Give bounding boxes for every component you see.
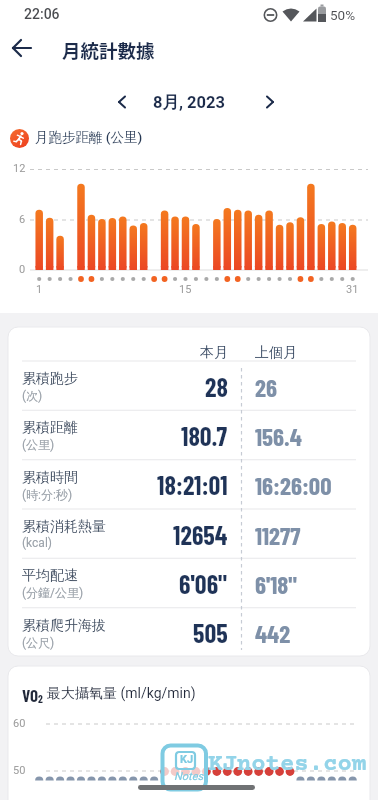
staticText: (公尺) (22, 635, 55, 650)
staticText: 最大攝氧量 (ml/kg/min) (47, 685, 196, 703)
staticText: 累積消耗熱量 (22, 518, 106, 536)
staticText: KJ (180, 753, 194, 766)
staticText: 本月 (200, 344, 228, 362)
staticText: 50% (330, 7, 356, 23)
staticText: 累積爬升海拔 (22, 617, 106, 635)
staticText: (次) (22, 388, 43, 403)
staticText: (分鐘/公里) (22, 585, 84, 600)
staticText: 442 (255, 618, 291, 648)
staticText: 月跑步距離 (公里) (35, 129, 143, 146)
staticText: (kcal) (22, 536, 52, 550)
staticText: VO (22, 685, 39, 705)
staticText: Notes (174, 770, 204, 783)
staticText: 60 (13, 717, 26, 730)
staticText: 6'18" (255, 569, 298, 599)
staticText: 15 (179, 283, 192, 296)
staticText: 1 (36, 283, 43, 296)
button[interactable] (8, 460, 370, 509)
staticText: 0 (19, 263, 26, 276)
staticText: 16:26:00 (255, 470, 332, 500)
staticText: 8月, 2023 (153, 92, 225, 113)
staticText: 22:06 (24, 6, 60, 22)
staticText: 平均配速 (22, 567, 78, 585)
staticText: 累積跑步 (22, 370, 78, 388)
button[interactable] (6, 34, 46, 62)
staticText: KJnotes.com (208, 751, 367, 778)
staticText: 2 (38, 692, 43, 705)
button[interactable] (8, 361, 370, 410)
button[interactable] (253, 88, 285, 116)
staticText: 31 (346, 283, 359, 296)
staticText: 6 (19, 213, 26, 226)
staticText: 50 (13, 764, 26, 777)
button[interactable] (8, 410, 370, 459)
staticText: 505 (193, 617, 228, 648)
staticText: 12 (13, 162, 26, 175)
staticText: 月統計數據 (62, 37, 155, 64)
staticText: 26 (255, 372, 277, 402)
staticText: 累積時間 (22, 469, 78, 487)
staticText: (公里) (22, 437, 55, 452)
staticText: 180.7 (181, 420, 228, 451)
button[interactable] (8, 509, 370, 558)
staticText: 156.4 (255, 421, 302, 451)
staticText: (時:分:秒) (22, 487, 73, 502)
staticText: 28 (205, 371, 228, 402)
button[interactable]: 8月, 2023 (140, 88, 238, 116)
button[interactable] (105, 88, 137, 116)
staticText: 累積距離 (22, 419, 78, 437)
staticText: 11277 (255, 520, 301, 550)
staticText: 18:21:01 (157, 469, 228, 500)
staticText: 6'06" (179, 568, 228, 599)
button[interactable] (8, 558, 370, 607)
staticText: 上個月 (255, 344, 297, 362)
staticText: 12654 (173, 519, 228, 550)
button[interactable] (8, 608, 370, 657)
